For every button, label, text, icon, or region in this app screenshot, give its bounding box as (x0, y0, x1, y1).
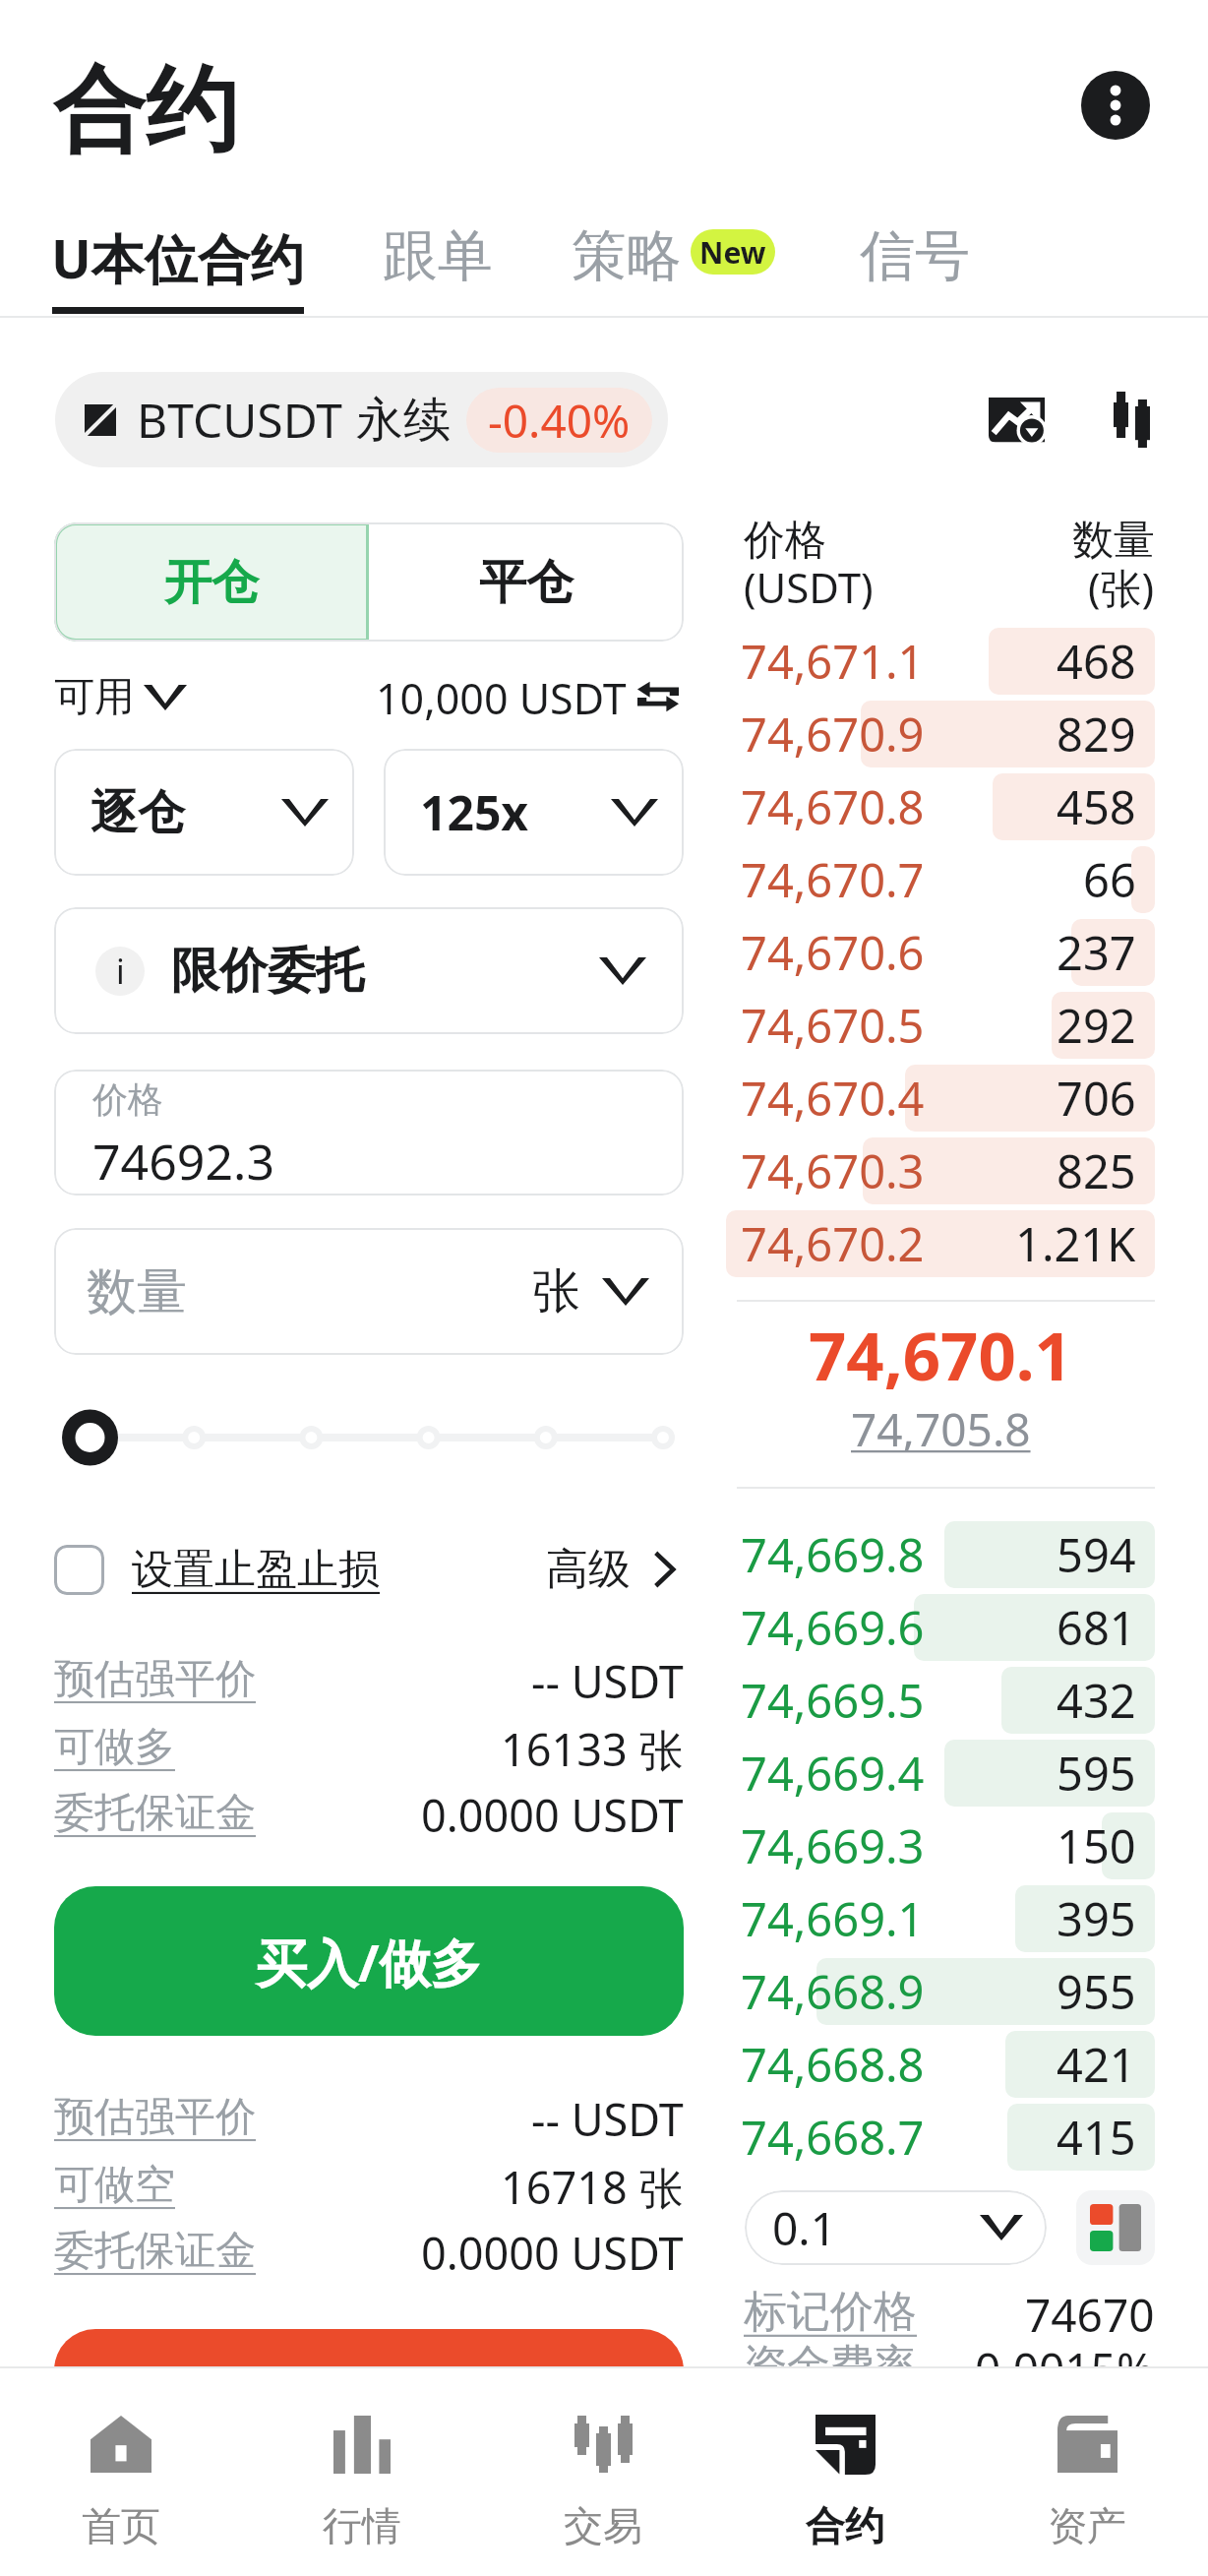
staticText: 74,669.1 (741, 1887, 925, 1950)
staticText: 74,669.5 (741, 1669, 925, 1732)
button[interactable]: BTCUSDT (55, 372, 668, 467)
staticText: 合约 (806, 2501, 884, 2550)
button[interactable]: 74,668.8 (726, 2031, 1155, 2098)
staticText: 74,669.3 (741, 1814, 925, 1877)
staticText: 张 (532, 1261, 580, 1322)
button[interactable]: 74,670.3 (726, 1137, 1155, 1204)
button[interactable]: 74,670.7 (726, 846, 1155, 913)
button[interactable]: i (54, 907, 684, 1034)
button[interactable]: 74,670.5 (726, 992, 1155, 1059)
button[interactable]: New (691, 229, 775, 275)
staticText: 150 (1057, 1814, 1136, 1877)
staticText: 设置止盈止损 (132, 1544, 380, 1596)
staticText: 595 (1057, 1742, 1136, 1805)
button[interactable]: 价格 (54, 1070, 684, 1196)
button[interactable]: 74,670.6 (726, 919, 1155, 986)
staticText: 0.1 (772, 2197, 836, 2259)
staticText: 信号 (860, 221, 970, 291)
button[interactable]: Switch asset (637, 680, 679, 713)
staticText: 74,670.5 (741, 994, 925, 1057)
button[interactable]: Order book layout (1076, 2190, 1155, 2265)
staticText: BTCUSDT (137, 388, 342, 452)
staticText: 74,670.4 (741, 1067, 925, 1130)
button[interactable]: 平仓 (369, 522, 684, 642)
button[interactable]: 74,668.9 (726, 1958, 1155, 2025)
staticText: 0.0015% (975, 2338, 1155, 2366)
button[interactable]: 卖出/做空 (54, 2329, 684, 2366)
button[interactable]: 74,669.4 (726, 1740, 1155, 1807)
staticText: -0.40% (488, 390, 631, 452)
button[interactable]: 首页 (0, 2368, 241, 2576)
staticText: 策略 (572, 221, 682, 291)
staticText: 421 (1057, 2033, 1136, 2096)
button[interactable]: 74,670.2 (726, 1210, 1155, 1277)
staticText: 16133 张 (501, 1719, 684, 1776)
staticText: 74,668.7 (741, 2106, 925, 2169)
button[interactable]: 74,669.1 (726, 1885, 1155, 1952)
staticText: 74,670.9 (741, 703, 925, 766)
staticText: 292 (1057, 994, 1136, 1057)
button[interactable]: 74,670.4 (726, 1065, 1155, 1132)
button[interactable]: 可用 (54, 672, 187, 723)
button[interactable]: Price chart (989, 398, 1045, 449)
button[interactable]: 买入/做多 (54, 1886, 684, 2036)
button[interactable]: 125x (384, 749, 684, 876)
button[interactable]: 信号 (846, 208, 984, 305)
staticText: 高级 (546, 1543, 631, 1596)
staticText: U本位合约 (51, 221, 304, 294)
button[interactable]: 74,669.6 (726, 1594, 1155, 1661)
staticText: 415 (1057, 2106, 1136, 2169)
button[interactable]: 逐仓 (54, 749, 354, 876)
staticText: 74,669.6 (741, 1596, 925, 1659)
staticText: 10,000 USDT (376, 669, 627, 726)
staticText: 237 (1057, 921, 1136, 984)
button[interactable]: More options (1081, 71, 1150, 140)
button[interactable]: Depth chart (1114, 392, 1150, 448)
staticText: 可做多 (54, 1722, 175, 1773)
staticText: 706 (1057, 1067, 1136, 1130)
button[interactable]: 数量 (54, 1228, 684, 1355)
button[interactable]: 开仓 (54, 522, 369, 642)
button[interactable]: 74,668.7 (726, 2104, 1155, 2171)
button[interactable]: 行情 (241, 2368, 482, 2576)
staticText: 数量 (1072, 515, 1155, 567)
staticText: (张) (1088, 559, 1155, 615)
button[interactable]: 74,670.8 (726, 773, 1155, 840)
staticText: 价格 (744, 515, 826, 567)
staticText: i (116, 949, 125, 994)
staticText: 74692.3 (92, 1128, 274, 1195)
button[interactable]: 设置止盈止损 (54, 1544, 380, 1596)
staticText: 逐仓 (91, 783, 185, 842)
staticText: 74,669.8 (741, 1523, 925, 1586)
button[interactable]: 合约 (724, 2368, 966, 2576)
staticText: 可做空 (54, 2160, 175, 2211)
button[interactable]: 74,670.9 (726, 701, 1155, 767)
staticText: 跟单 (383, 221, 493, 291)
staticText: 74,705.8 (851, 1398, 1031, 1460)
button[interactable]: 策略 (558, 208, 695, 305)
button[interactable]: 74,669.8 (726, 1521, 1155, 1588)
staticText: 829 (1057, 703, 1136, 766)
staticText: 74,670.6 (741, 921, 925, 984)
button[interactable]: 74,671.1 (726, 628, 1155, 695)
button[interactable]: 0.1 (745, 2190, 1047, 2265)
button[interactable]: 交易 (482, 2368, 724, 2576)
button[interactable]: U本位合约 (37, 208, 318, 308)
staticText: 委托保证金 (54, 1788, 256, 1839)
button[interactable]: 74,669.5 (726, 1667, 1155, 1734)
staticText: 可用 (54, 672, 135, 723)
button[interactable]: 资产 (966, 2368, 1208, 2576)
staticText: 681 (1057, 1596, 1136, 1659)
button[interactable]: 跟单 (369, 208, 507, 305)
staticText: 0.0000 USDT (421, 2223, 684, 2280)
staticText: 74,670.2 (741, 1212, 925, 1275)
staticText: 永续 (356, 391, 451, 450)
staticText: 432 (1057, 1669, 1136, 1732)
button[interactable]: 74,669.3 (726, 1812, 1155, 1879)
staticText: 468 (1057, 630, 1136, 693)
button[interactable]: 高级 (546, 1543, 684, 1596)
staticText: (USDT) (744, 559, 874, 615)
staticText: 行情 (323, 2501, 401, 2550)
staticText: -- USDT (531, 1651, 684, 1708)
staticText: 数量 (87, 1260, 187, 1323)
